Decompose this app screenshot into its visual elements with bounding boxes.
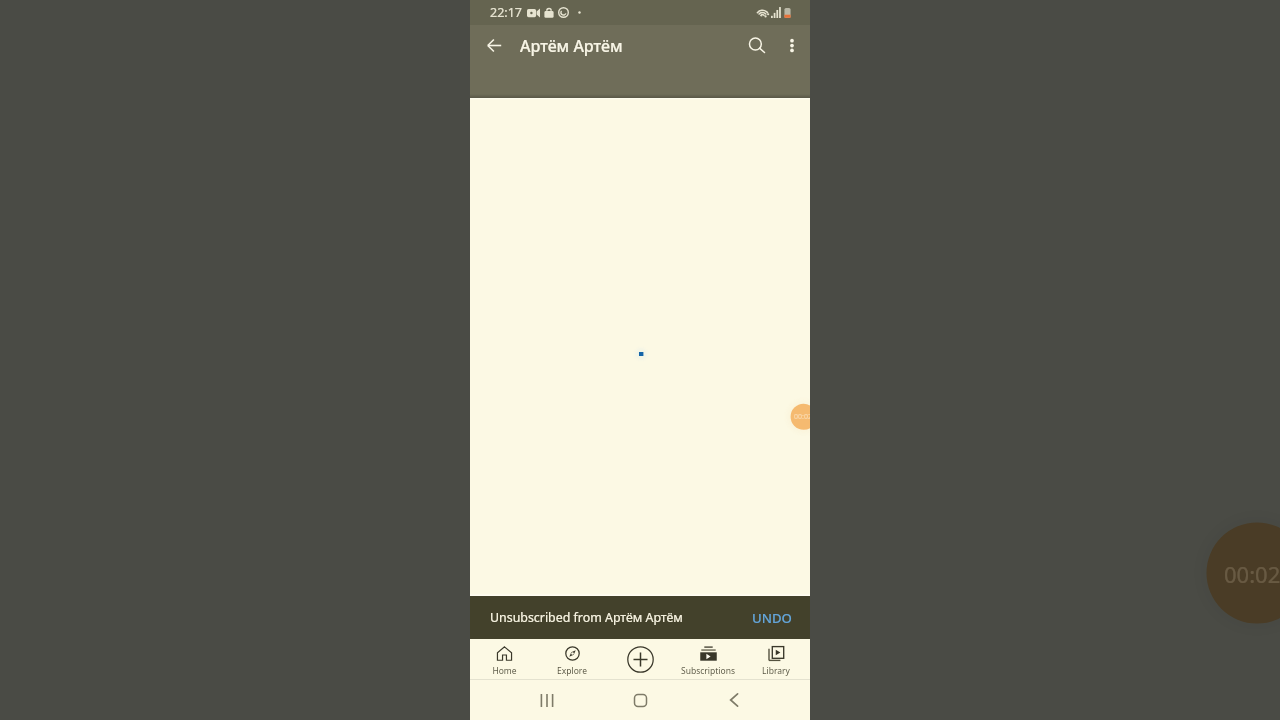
button[interactable]: Recents xyxy=(500,680,594,720)
button[interactable]: Search xyxy=(737,25,777,66)
staticText: 00:02 xyxy=(794,412,810,422)
staticText: Unsubscribed from Артём Артём xyxy=(490,609,683,626)
button[interactable]: More options xyxy=(777,25,806,66)
button[interactable]: Screen recording timer overlay xyxy=(1197,523,1280,624)
button[interactable]: Unsubscribed from Артём Артём xyxy=(470,596,810,639)
button[interactable]: Library xyxy=(742,639,810,679)
staticText: Артём Артём xyxy=(520,35,623,57)
button[interactable]: Back xyxy=(470,25,518,66)
button[interactable]: Recording timer bubble xyxy=(790,404,810,430)
button[interactable]: UNDO xyxy=(752,609,792,627)
staticText: 00:02 xyxy=(1224,559,1280,589)
staticText: UNDO xyxy=(752,609,792,627)
button[interactable]: Subscriptions xyxy=(674,639,742,679)
button[interactable]: Back xyxy=(687,680,780,720)
button[interactable]: Explore xyxy=(538,639,606,679)
button[interactable]: Create xyxy=(606,639,674,679)
staticText: Explore xyxy=(557,665,587,677)
staticText: Library xyxy=(762,665,790,677)
staticText: Home xyxy=(492,665,517,677)
staticText: 22:17 xyxy=(490,4,522,21)
button[interactable]: Home xyxy=(594,680,687,720)
button[interactable]: Home xyxy=(470,639,538,679)
staticText: Subscriptions xyxy=(681,665,735,677)
